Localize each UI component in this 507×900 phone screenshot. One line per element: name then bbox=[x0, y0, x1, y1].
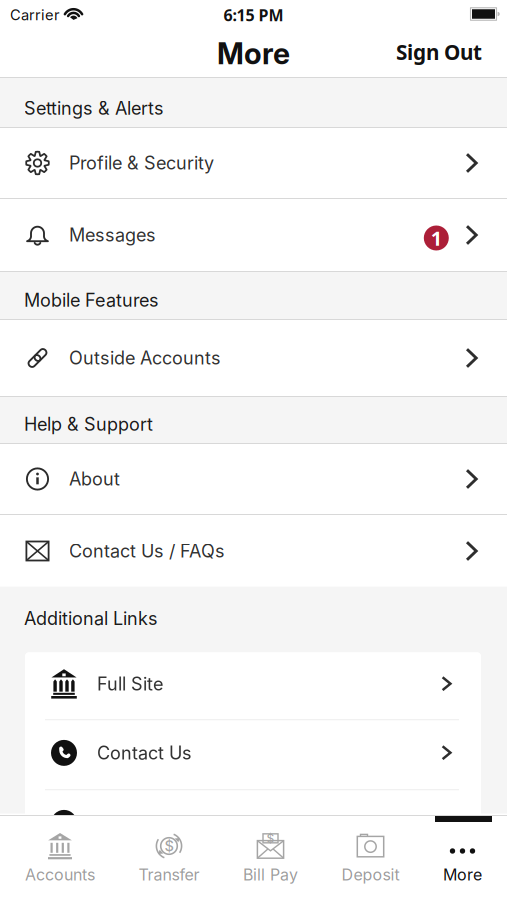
staticText: Additional Links bbox=[24, 608, 158, 629]
staticText: Help & Support bbox=[24, 413, 153, 435]
staticText: $ bbox=[164, 837, 173, 855]
button[interactable]: Sign Out bbox=[396, 39, 482, 67]
button[interactable]: Profile & Security bbox=[0, 128, 507, 199]
staticText: Profile & Security bbox=[69, 152, 214, 174]
staticText: Contact Us bbox=[97, 742, 192, 764]
button[interactable]: Deposit bbox=[341, 832, 399, 884]
staticText: 6:15 PM bbox=[223, 4, 283, 26]
button[interactable]: Locations bbox=[25, 790, 481, 859]
button[interactable]: Contact Us bbox=[25, 720, 481, 789]
staticText: More bbox=[443, 865, 482, 884]
staticText: Outside Accounts bbox=[69, 347, 221, 369]
button[interactable]: Outside Accounts bbox=[0, 320, 507, 397]
staticText: About bbox=[69, 468, 120, 490]
staticText: Accounts bbox=[25, 865, 95, 884]
button[interactable]: Messages bbox=[0, 199, 507, 272]
button[interactable]: $ bbox=[243, 832, 298, 884]
button[interactable]: Full Site bbox=[25, 652, 481, 719]
staticText: $ bbox=[266, 831, 274, 846]
staticText: Carrier bbox=[10, 6, 60, 24]
staticText: Deposit bbox=[341, 865, 399, 884]
staticText: Messages bbox=[69, 224, 156, 246]
staticText: Contact Us / FAQs bbox=[69, 540, 225, 562]
staticText: More bbox=[217, 36, 290, 71]
button[interactable]: More bbox=[443, 832, 482, 884]
staticText: Mobile Features bbox=[24, 289, 159, 311]
button[interactable]: Accounts bbox=[25, 832, 95, 884]
button[interactable]: $ bbox=[138, 832, 199, 884]
staticText: Bill Pay bbox=[243, 865, 298, 884]
staticText: Locations bbox=[97, 812, 180, 834]
button[interactable]: About bbox=[0, 444, 507, 515]
staticText: Full Site bbox=[97, 673, 163, 695]
button[interactable]: Contact Us / FAQs bbox=[0, 515, 507, 588]
staticText: Transfer bbox=[138, 865, 199, 884]
staticText: 1 bbox=[431, 224, 442, 252]
staticText: Settings & Alerts bbox=[24, 97, 164, 119]
staticText: Sign Out bbox=[396, 38, 482, 66]
